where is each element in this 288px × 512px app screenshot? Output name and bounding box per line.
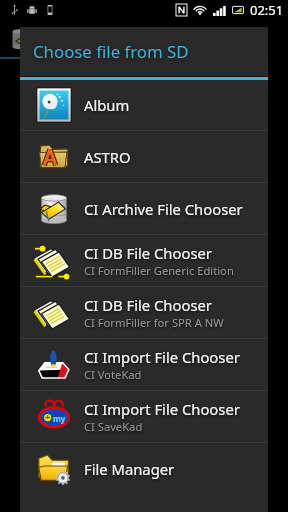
button[interactable]: File Manager (20, 443, 268, 494)
staticText: CI FormFiller for SPR A NW (84, 315, 224, 330)
staticText: CI SaveKad (84, 419, 143, 434)
button[interactable]: CI DB File Chooser (20, 235, 268, 286)
staticText: CI VoteKad (84, 367, 142, 382)
staticText: Choose file from SD (33, 40, 189, 63)
staticText: my (53, 413, 66, 424)
staticText: CI Archive File Chooser (84, 199, 243, 219)
button[interactable]: CI Import File Chooser (20, 339, 268, 390)
button[interactable]: my (20, 391, 268, 442)
staticText: File Manager (84, 459, 175, 479)
staticText: 02:51 (250, 1, 284, 19)
staticText: CI DB File Chooser (84, 295, 212, 315)
button[interactable]: CI DB File Chooser (20, 287, 268, 338)
staticText: CI Import File Chooser (84, 399, 240, 419)
button[interactable]: ASTRO (20, 131, 268, 182)
staticText: ASTRO (84, 147, 131, 167)
button[interactable]: Album (20, 80, 268, 130)
button[interactable]: CI Archive File Chooser (20, 183, 268, 234)
staticText: CI FormFiller Generic Edition (84, 263, 234, 278)
staticText: CI DB File Chooser (84, 243, 212, 263)
staticText: Album (84, 95, 130, 115)
staticText: CI Import File Chooser (84, 347, 240, 367)
